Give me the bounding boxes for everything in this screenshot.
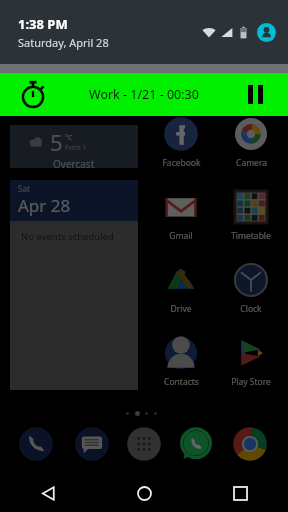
button[interactable]: Play Store <box>220 333 282 388</box>
button[interactable]: Sat <box>10 180 138 390</box>
button[interactable]: Messages <box>70 422 114 466</box>
button[interactable]: Pause <box>222 73 288 116</box>
button[interactable]: Phone <box>14 422 58 466</box>
button[interactable]: Timetable <box>220 187 282 242</box>
button[interactable]: User account <box>257 23 276 42</box>
staticText: Facebook <box>162 157 201 169</box>
staticText: Clock <box>240 303 262 315</box>
button[interactable]: WhatsApp <box>174 422 218 466</box>
staticText: Play Store <box>231 376 271 388</box>
button[interactable]: Contacts <box>150 333 212 388</box>
button[interactable]: Camera <box>220 114 282 169</box>
staticText: Saturday, April 28 <box>18 35 109 50</box>
button[interactable]: Recent apps <box>192 475 288 512</box>
button[interactable]: Drive <box>150 260 212 315</box>
staticText: Timetable <box>231 230 271 242</box>
staticText: °C <box>65 133 73 143</box>
staticText: Gmail <box>169 230 193 242</box>
button[interactable]: Back <box>0 475 96 512</box>
button[interactable]: All apps <box>122 422 166 466</box>
button[interactable]: Facebook <box>150 114 212 169</box>
button[interactable]: 5 <box>10 125 138 168</box>
staticText: 1:38 PM <box>18 15 68 33</box>
button[interactable]: Home <box>96 475 192 512</box>
staticText: 5 <box>50 127 63 157</box>
button[interactable]: Clock <box>220 260 282 315</box>
staticText: Sat <box>18 183 30 194</box>
staticText: Work - 1/21 - 00:30 <box>89 86 199 103</box>
button[interactable]: Gmail <box>150 187 212 242</box>
staticText: Feels 1 <box>65 143 86 152</box>
staticText: Overcast <box>53 157 95 168</box>
button[interactable]: Work - 1/21 - 00:30 <box>0 73 288 116</box>
staticText: Contacts <box>164 376 199 388</box>
staticText: Apr 28 <box>18 194 71 217</box>
button[interactable]: Chrome <box>228 422 272 466</box>
staticText: Drive <box>170 303 192 315</box>
staticText: Camera <box>236 157 267 169</box>
staticText: No events scheduled <box>21 230 114 243</box>
